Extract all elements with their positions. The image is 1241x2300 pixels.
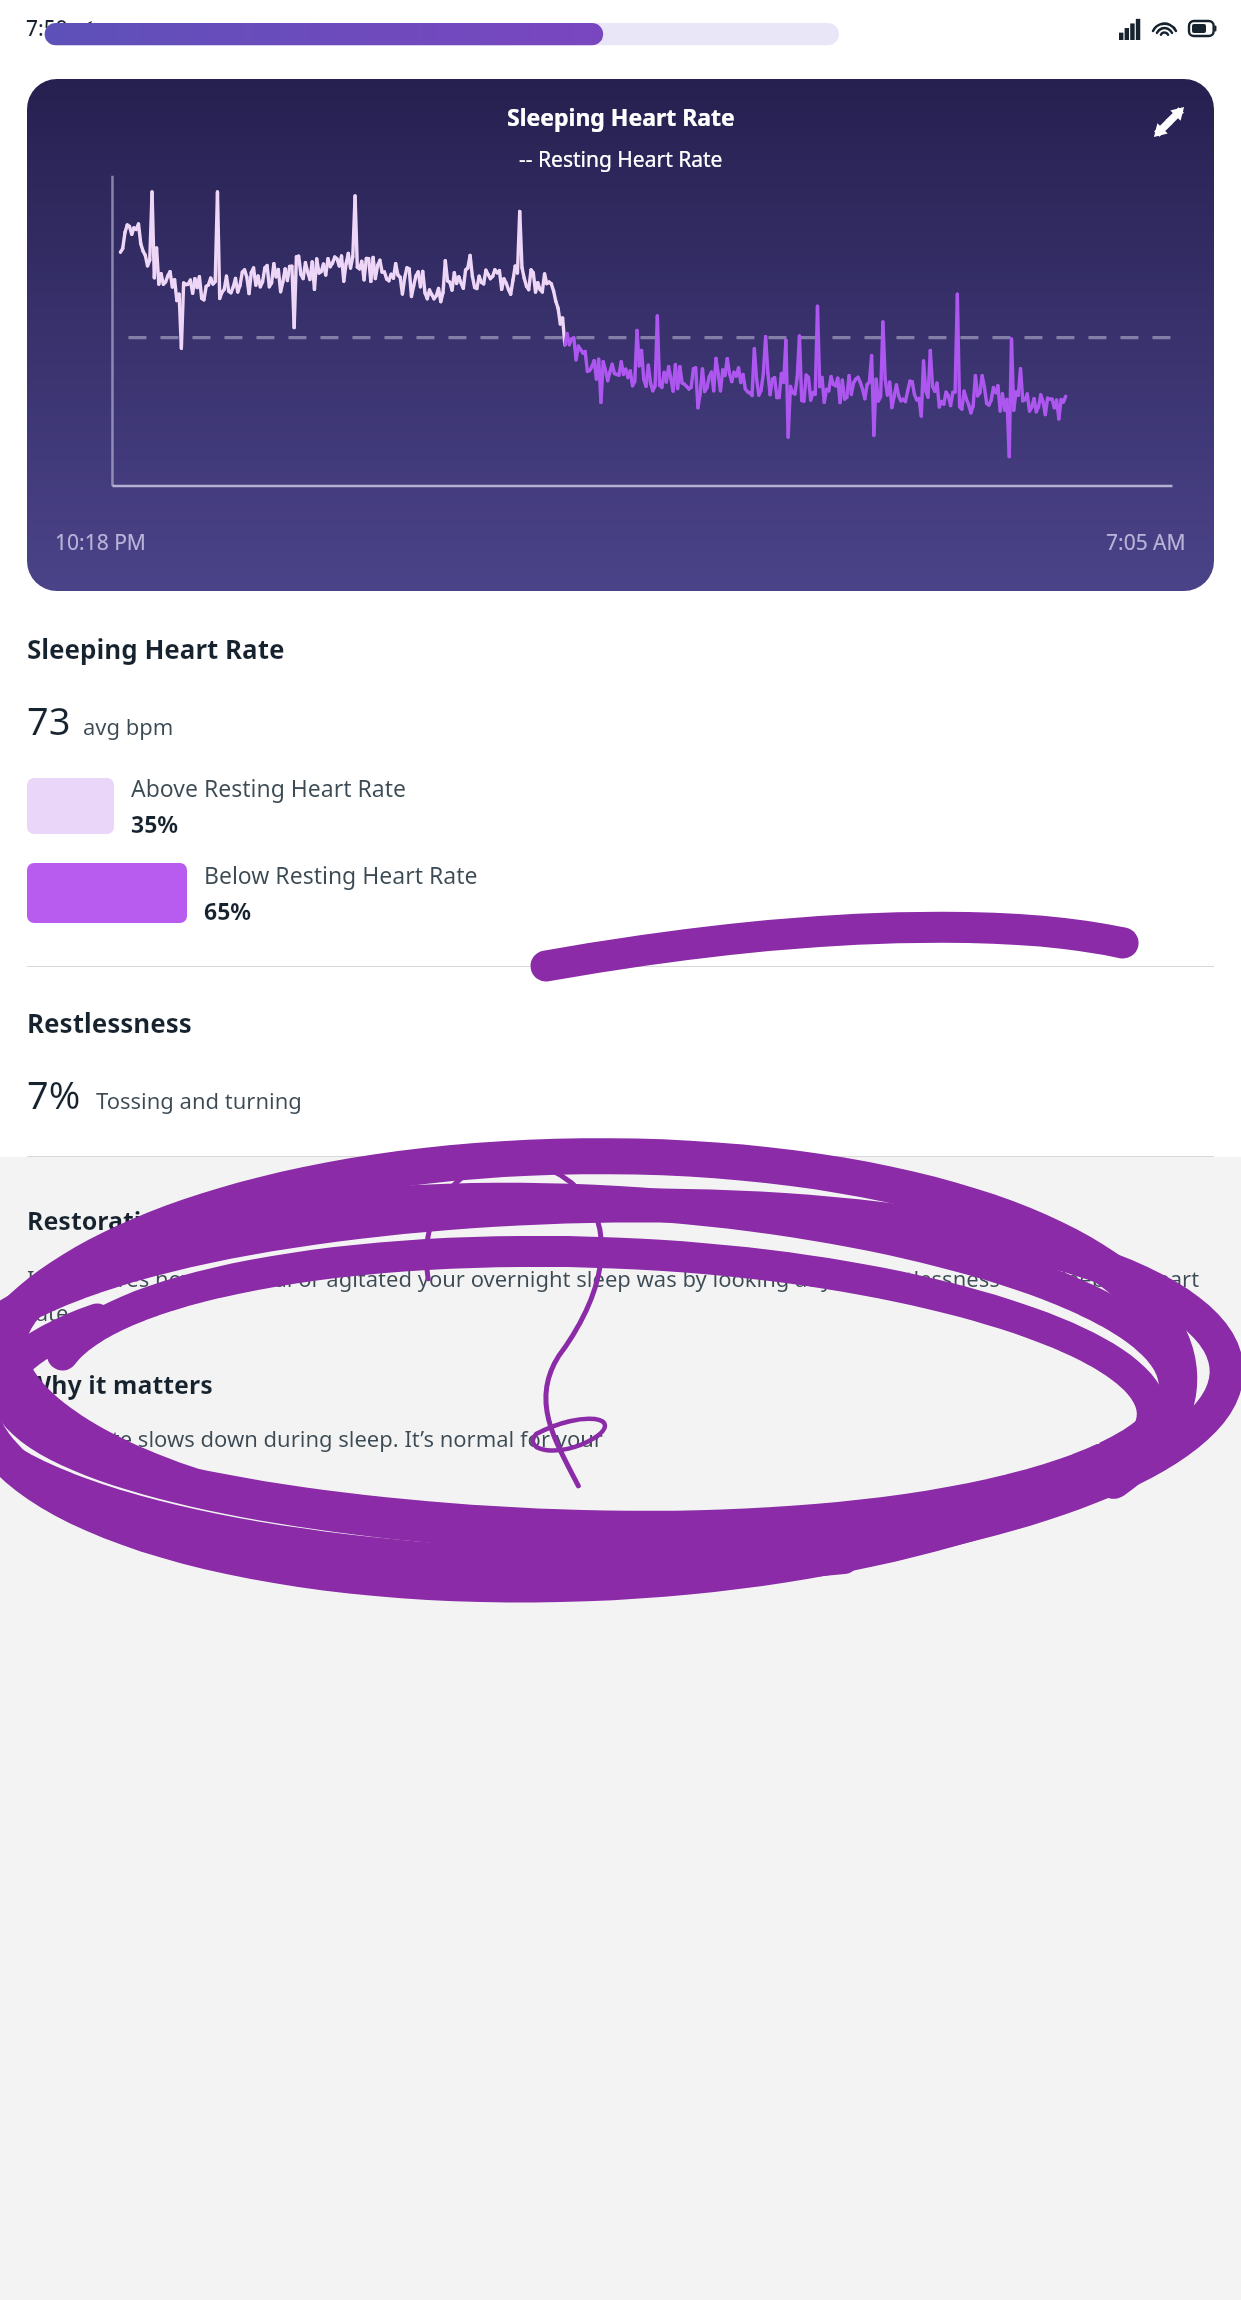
staticText: Tossing and turning [96, 1085, 302, 1115]
staticText: Below Resting Heart Rate [204, 859, 478, 890]
button[interactable]: Above Resting Heart Rate [27, 772, 1214, 839]
staticText: avg bpm [83, 711, 174, 741]
staticText: 10:18 PM [55, 528, 146, 557]
staticText: 7:05 AM [1106, 528, 1186, 557]
staticText: Why it matters [27, 1367, 213, 1401]
button[interactable]: Below Resting Heart Rate [27, 859, 1214, 926]
staticText: Sleeping Heart Rate [27, 631, 285, 666]
button[interactable]: Sleeping Heart Rate [27, 79, 1214, 591]
staticText: -- Resting Heart Rate [519, 145, 723, 174]
staticText: It measures how peaceful or agitated you… [27, 1263, 1214, 1327]
staticText: 7% [27, 1068, 81, 1120]
staticText: 73 [27, 694, 71, 746]
staticText: 65% [204, 895, 252, 926]
staticText: 7:59 [26, 14, 68, 43]
staticText: Above Resting Heart Rate [131, 772, 406, 803]
button[interactable]: Expand chart [1144, 97, 1194, 147]
staticText: Restlessness [27, 1005, 192, 1040]
staticText: Heart rate slows down during sleep. It’s… [27, 1423, 603, 1453]
staticText: Restoration is 25% of the score [27, 1203, 411, 1237]
staticText: 35% [131, 808, 179, 839]
staticText: Sleeping Heart Rate [507, 101, 735, 132]
